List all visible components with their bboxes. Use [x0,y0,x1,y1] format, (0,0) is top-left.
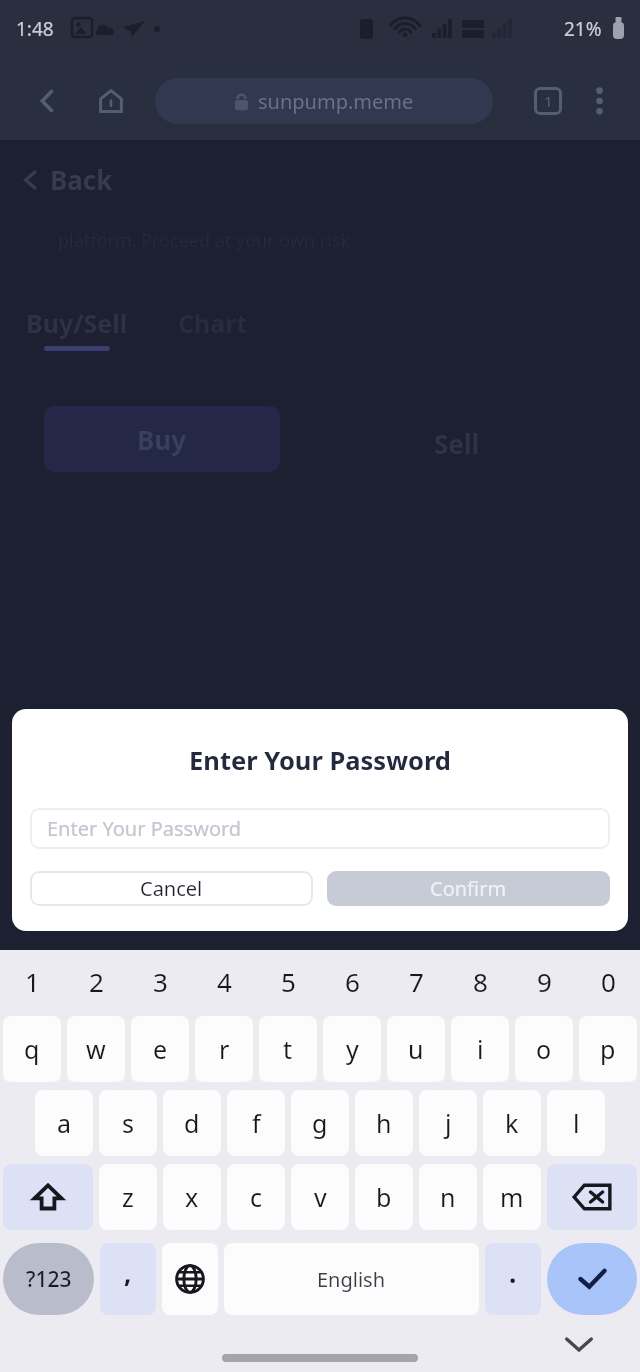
button[interactable]: Backspace [547,1164,637,1230]
staticText: 4 [217,964,232,999]
staticText: 1:48 [16,16,54,42]
button[interactable]: u [387,1016,445,1082]
button[interactable]: s [99,1090,157,1156]
staticText: Enter Your Password [12,743,628,778]
button[interactable]: z [99,1164,157,1230]
button[interactable]: l [547,1090,605,1156]
staticText: f [252,1106,261,1140]
button[interactable]: 9 [512,950,576,1012]
staticText: Confirm [430,875,507,902]
button[interactable]: Tabs [526,79,570,123]
staticText: ?123 [26,1265,72,1294]
staticText: e [153,1032,168,1066]
staticText: v [314,1180,327,1214]
button[interactable]: Confirm [327,871,610,906]
button[interactable]: 7 [384,950,448,1012]
staticText: sunpump.meme [258,88,414,115]
staticText: p [600,1032,616,1066]
button[interactable]: w [67,1016,125,1082]
button[interactable]: English [224,1243,479,1315]
staticText: 9 [537,964,552,999]
button[interactable]: r [195,1016,253,1082]
button[interactable]: sunpump.meme [155,78,493,124]
staticText: z [122,1180,134,1214]
staticText: 1 [25,964,40,999]
button[interactable]: 1 [0,950,64,1012]
button[interactable]: o [515,1016,573,1082]
staticText: i [477,1032,484,1066]
staticText: 7 [409,964,424,999]
button[interactable]: 3 [128,950,192,1012]
staticText: u [408,1032,424,1066]
button[interactable]: Shift [3,1164,93,1230]
staticText: Cancel [140,875,203,902]
staticText: platform. Proceed at your own risk. [58,228,355,253]
staticText: o [536,1032,552,1066]
button[interactable]: , [100,1243,156,1315]
button[interactable]: 2 [64,950,128,1012]
button[interactable]: k [483,1090,541,1156]
staticText: d [184,1106,200,1140]
staticText: 5 [281,964,296,999]
button[interactable]: g [291,1090,349,1156]
staticText: Buy [137,422,187,457]
staticText: Sell [434,426,480,461]
staticText: 8 [473,964,488,999]
staticText: l [573,1106,580,1140]
button[interactable]: Enter [547,1243,637,1315]
button[interactable]: h [355,1090,413,1156]
button[interactable]: e [131,1016,189,1082]
button[interactable]: ?123 [3,1243,94,1315]
button[interactable]: p [579,1016,637,1082]
button[interactable]: n [419,1164,477,1230]
staticText: q [24,1032,40,1066]
button[interactable]: v [291,1164,349,1230]
staticText: English [317,1266,386,1293]
staticText: h [376,1106,392,1140]
button[interactable]: b [355,1164,413,1230]
staticText: . [509,1255,517,1290]
button[interactable]: Cancel [30,871,313,906]
button[interactable]: More options [578,80,620,122]
staticText: k [505,1106,519,1140]
staticText: 6 [345,964,360,999]
button[interactable]: Change language [162,1243,218,1315]
staticText: j [445,1106,452,1140]
staticText: 2 [89,964,104,999]
staticText: Back [50,162,113,197]
button[interactable]: f [227,1090,285,1156]
button[interactable]: x [163,1164,221,1230]
button[interactable]: 4 [192,950,256,1012]
button[interactable]: c [227,1164,285,1230]
button[interactable]: 8 [448,950,512,1012]
button[interactable]: Back [24,78,70,124]
staticText: Enter Your Password [47,815,242,842]
staticText: 1 [544,91,553,111]
button[interactable]: Back [20,162,113,197]
button[interactable]: q [3,1016,61,1082]
staticText: 3 [153,964,168,999]
staticText: m [500,1180,524,1214]
button[interactable]: y [323,1016,381,1082]
button[interactable]: 0 [576,950,640,1012]
button[interactable]: Enter Your Password [30,808,610,849]
button[interactable]: Hide keyboard [558,1323,600,1365]
button[interactable]: 5 [256,950,320,1012]
button[interactable]: 6 [320,950,384,1012]
staticText: y [346,1032,359,1066]
staticText: 0 [601,964,616,999]
button[interactable]: a [35,1090,93,1156]
staticText: 21% [564,16,602,42]
staticText: r [219,1032,230,1066]
staticText: w [86,1032,106,1066]
staticText: g [312,1106,328,1140]
button[interactable]: i [451,1016,509,1082]
button[interactable]: . [485,1243,541,1315]
button[interactable]: j [419,1090,477,1156]
button[interactable]: t [259,1016,317,1082]
button[interactable]: Home [88,78,134,124]
button[interactable]: d [163,1090,221,1156]
staticText: , [124,1255,132,1290]
button[interactable]: m [483,1164,541,1230]
staticText: t [283,1032,293,1066]
